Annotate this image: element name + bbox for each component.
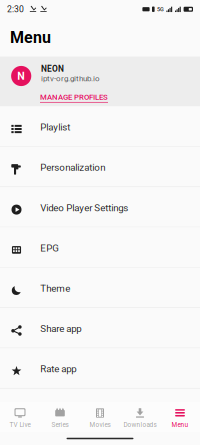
button[interactable]: Theme [0,268,200,308]
staticText: Menu [171,421,188,428]
button[interactable]: Downloads [120,402,160,432]
staticText: N [17,70,25,82]
button[interactable]: EPG [0,227,200,268]
staticText: iptv-org.github.io [41,74,100,83]
staticText: Movies [89,421,110,428]
staticText: EPG [40,242,59,254]
staticText: 5G [157,6,164,13]
staticText: MANAGE PROFILES [40,93,108,102]
button[interactable]: Video Player Settings [0,187,200,227]
staticText: Video Player Settings [40,202,128,213]
button[interactable]: Movies [80,402,120,432]
button[interactable]: Share app [0,308,200,348]
staticText: Playlist [40,121,70,133]
button[interactable]: Personalization [0,147,200,187]
staticText: Theme [40,283,70,294]
staticText: TV Live [9,421,30,428]
staticText: Menu [10,28,51,47]
staticText: Personalization [40,162,105,173]
staticText: Share app [40,323,81,334]
staticText: NEON [41,64,64,74]
staticText: Series [51,421,68,428]
staticText: 2:30 [7,4,24,14]
button[interactable]: Menu [160,402,200,432]
staticText: Rate app [40,363,76,375]
button[interactable]: Playlist [0,106,200,147]
button[interactable]: MANAGE PROFILES [40,93,108,103]
button[interactable]: Rate app [0,348,200,389]
button[interactable]: Series [40,402,80,432]
staticText: Downloads [123,421,156,428]
button[interactable]: TV Live [0,402,40,432]
